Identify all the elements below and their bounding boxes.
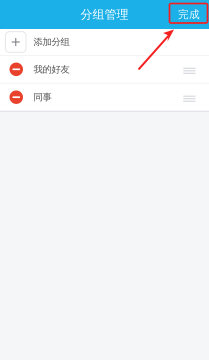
staticText: 完成 [178,8,200,21]
button[interactable]: 我的好友 [0,56,209,83]
button[interactable]: 添加分组 [0,29,209,55]
staticText: 分组管理 [80,7,128,22]
button[interactable]: 同事 [0,84,209,111]
staticText: 我的好友 [33,64,69,75]
button[interactable]: 完成 [172,5,206,24]
staticText: 添加分组 [33,36,69,48]
staticText: 同事 [33,91,51,103]
